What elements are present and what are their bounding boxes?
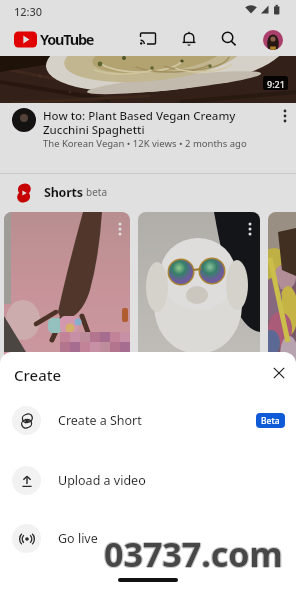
staticText: 12:30 — [14, 4, 43, 19]
button[interactable] — [4, 212, 130, 392]
staticText: Upload a video — [58, 472, 146, 489]
staticText: Beta — [261, 415, 280, 427]
button[interactable] — [278, 107, 292, 125]
button[interactable]: Upload a video — [0, 465, 296, 495]
staticText: YouTube — [40, 29, 94, 49]
staticText: Shorts — [44, 184, 83, 201]
staticText: Go live — [58, 530, 98, 547]
staticText: 9:21 — [267, 78, 285, 90]
button[interactable] — [139, 30, 157, 48]
staticText: 03737.com — [103, 531, 282, 577]
staticText: 03737.com — [104, 530, 283, 576]
button[interactable]: YouTube — [14, 29, 94, 49]
staticText: Create — [14, 365, 62, 385]
button[interactable]: How to: Plant Based Vegan Creamy — [0, 103, 296, 173]
button[interactable] — [180, 30, 198, 48]
staticText: 03737.com — [104, 531, 283, 577]
staticText: How to: Plant Based Vegan Creamy — [43, 108, 236, 124]
button[interactable] — [138, 212, 260, 392]
staticText: Create a Short — [58, 412, 142, 429]
button[interactable] — [263, 30, 283, 50]
staticText: beta — [86, 185, 108, 199]
button[interactable]: Go live — [0, 523, 296, 553]
button[interactable]: 9:21 — [0, 56, 296, 103]
staticText: Zucchini Spaghetti — [43, 122, 145, 138]
button[interactable]: Create a Short — [0, 405, 296, 435]
staticText: The Korean Vegan • 12K views • 2 months … — [43, 137, 247, 150]
staticText: 03737.com — [105, 531, 284, 577]
staticText: 03737.com — [104, 532, 283, 578]
button[interactable] — [266, 360, 292, 386]
button[interactable] — [220, 30, 238, 48]
button[interactable] — [268, 212, 296, 392]
